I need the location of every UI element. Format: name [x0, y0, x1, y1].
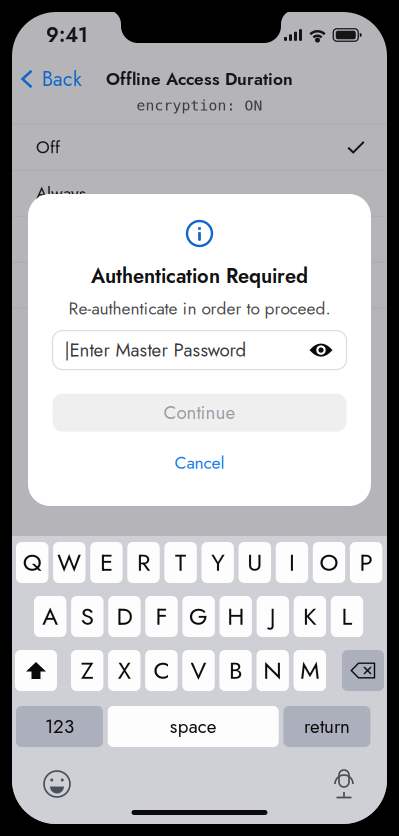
staticText: G — [189, 600, 208, 633]
button[interactable]: Delete — [342, 650, 384, 691]
staticText: X — [118, 654, 131, 687]
staticText: V — [190, 654, 206, 687]
button[interactable]: N — [256, 650, 289, 691]
button[interactable]: space — [108, 706, 279, 747]
button[interactable]: 1 Hour — [12, 217, 387, 262]
staticText: Y — [211, 546, 224, 579]
staticText: Z — [81, 654, 94, 687]
staticText: Re-authenticate in order to proceed. — [68, 296, 330, 321]
staticText: T — [175, 546, 186, 579]
button[interactable]: Shift — [15, 650, 57, 691]
staticText: P — [360, 546, 373, 579]
staticText: O — [319, 546, 338, 579]
button[interactable]: C — [145, 650, 178, 691]
button[interactable]: Emoji — [43, 770, 71, 798]
staticText: return — [304, 713, 350, 740]
staticText: Q — [23, 546, 42, 579]
button[interactable]: Off — [12, 125, 387, 170]
button[interactable]: 123 — [16, 706, 103, 747]
button[interactable]: Back — [19, 60, 84, 98]
button[interactable]: Continue — [52, 394, 346, 432]
button[interactable]: 4 Hours — [12, 263, 387, 308]
staticText: K — [303, 600, 317, 633]
button[interactable]: Always — [12, 171, 387, 216]
button[interactable]: S — [71, 596, 103, 637]
staticText: C — [153, 654, 169, 687]
staticText: I — [289, 546, 295, 579]
button[interactable]: return — [283, 706, 370, 747]
button[interactable]: Dictation — [334, 769, 354, 799]
button[interactable]: Y — [201, 542, 234, 583]
button[interactable]: Q — [16, 542, 48, 583]
button[interactable]: H — [219, 596, 252, 637]
button[interactable]: E — [90, 542, 123, 583]
staticText: M — [300, 654, 319, 687]
staticText: Offline Access Duration — [106, 67, 293, 91]
staticText: 4 Hours — [36, 273, 94, 297]
button[interactable]: Z — [71, 650, 103, 691]
button[interactable]: I — [276, 542, 308, 583]
button[interactable]: Show password — [309, 342, 332, 358]
button[interactable]: Cancel — [154, 447, 244, 479]
button[interactable]: O — [313, 542, 345, 583]
staticText: R — [137, 546, 150, 579]
button[interactable]: W — [53, 542, 85, 583]
staticText: Cancel — [174, 451, 224, 475]
button[interactable]: P — [350, 542, 382, 583]
staticText: A — [42, 600, 58, 633]
staticText: U — [247, 546, 262, 579]
staticText: Always — [36, 181, 86, 205]
button[interactable]: J — [257, 596, 289, 637]
button[interactable]: K — [294, 596, 326, 637]
staticText: 9:41 — [46, 21, 88, 49]
button[interactable]: X — [108, 650, 140, 691]
staticText: Back — [42, 65, 82, 93]
staticText: F — [155, 600, 167, 633]
staticText: W — [57, 546, 81, 579]
staticText: |Enter Master Password — [64, 337, 246, 363]
button[interactable]: A — [34, 596, 66, 637]
button[interactable]: R — [127, 542, 160, 583]
staticText: S — [81, 600, 94, 633]
button[interactable]: G — [182, 596, 215, 637]
staticText: Off — [36, 135, 60, 159]
staticText: space — [170, 713, 217, 740]
button[interactable]: V — [182, 650, 215, 691]
button[interactable]: F — [145, 596, 178, 637]
staticText: E — [100, 546, 113, 579]
button[interactable]: L — [331, 596, 363, 637]
staticText: Authentication Required — [91, 262, 308, 290]
staticText: N — [263, 654, 282, 687]
staticText: Continue — [163, 399, 235, 426]
staticText: L — [341, 600, 352, 633]
staticText: H — [227, 600, 244, 633]
button[interactable]: U — [239, 542, 271, 583]
staticText: encryption: ON — [136, 97, 262, 114]
staticText: 123 — [45, 713, 74, 740]
button[interactable]: M — [294, 650, 326, 691]
staticText: D — [116, 600, 132, 633]
staticText: J — [270, 600, 276, 633]
staticText: B — [229, 654, 242, 687]
button[interactable]: B — [219, 650, 252, 691]
button[interactable]: D — [108, 596, 141, 637]
button[interactable]: T — [164, 542, 197, 583]
